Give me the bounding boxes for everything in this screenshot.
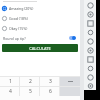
button[interactable]: 2 [20,77,40,86]
button[interactable]: 5 [20,87,40,96]
button[interactable]: Volume down [87,20,94,27]
button[interactable]: 3 [40,77,60,86]
button[interactable]: Power [87,2,94,9]
button[interactable]: 1 [0,77,20,86]
staticText: CALCULATE [29,46,51,51]
button[interactable]: Zoom [87,56,94,63]
button[interactable]: Equals key [60,77,80,86]
button[interactable]: 6 [40,87,60,96]
staticText: 1 [9,78,12,85]
staticText: 6 [49,88,52,95]
button[interactable]: Okay (15%) [0,23,80,33]
staticText: Okay (15%) [9,26,28,31]
button[interactable]: Rotate left [87,29,94,36]
button[interactable]: Good (18%) [0,13,80,23]
button[interactable]: Back [87,65,94,72]
staticText: 3 [49,78,52,85]
button[interactable]: Home [87,74,94,81]
button[interactable]: Rotate right [87,38,94,45]
button[interactable]: Screenshot [87,47,94,54]
button[interactable]: Volume up [87,11,94,18]
staticText: Amazing (20%) [9,6,34,11]
button[interactable]: CALCULATE [2,44,78,52]
other: Round up tip toggle [69,36,76,40]
staticText: Good (18%) [9,16,28,21]
staticText: 5 [29,88,32,95]
button[interactable]: Round up tip? [0,33,80,43]
staticText: Round up tip? [3,36,26,41]
button[interactable]: Amazing (20%) [0,3,80,13]
staticText: 2 [29,78,32,85]
button[interactable]: 4 [0,87,20,96]
button[interactable]: Overview [87,83,94,89]
staticText: 4 [9,88,12,95]
